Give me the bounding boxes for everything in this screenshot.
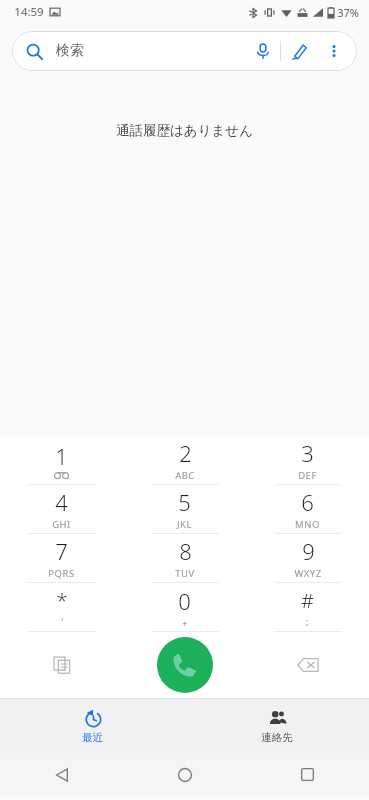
staticText: DEF bbox=[298, 469, 317, 482]
button[interactable]: 7 bbox=[0, 534, 123, 582]
staticText: 1 bbox=[55, 441, 68, 471]
staticText: ABC bbox=[175, 469, 195, 482]
button[interactable]: 4 bbox=[0, 485, 123, 533]
staticText: 検索 bbox=[56, 42, 84, 60]
staticText: GHI bbox=[52, 518, 71, 531]
staticText: PQRS bbox=[48, 567, 75, 580]
staticText: * bbox=[56, 587, 68, 614]
staticText: 7 bbox=[55, 536, 68, 566]
staticText: 9 bbox=[302, 536, 315, 566]
button[interactable]: 8 bbox=[123, 534, 246, 582]
staticText: 通話履歴はありません bbox=[116, 122, 253, 139]
staticText: ; bbox=[306, 615, 309, 627]
button[interactable]: 1 bbox=[0, 436, 123, 484]
staticText: TUV bbox=[175, 567, 195, 580]
staticText: 0 bbox=[178, 586, 191, 616]
staticText: 14:59 bbox=[14, 4, 44, 20]
button[interactable]: Backspace bbox=[246, 632, 369, 698]
button[interactable]: # bbox=[246, 583, 369, 631]
staticText: 連絡先 bbox=[261, 731, 293, 744]
button[interactable]: Back bbox=[0, 753, 123, 796]
staticText: + bbox=[182, 617, 188, 629]
staticText: 37% bbox=[337, 5, 359, 20]
button[interactable]: 検索 bbox=[12, 31, 357, 71]
staticText: WXYZ bbox=[294, 567, 322, 580]
staticText: 4 bbox=[55, 487, 68, 517]
staticText: 6 bbox=[301, 487, 314, 517]
button[interactable]: Edit bbox=[281, 33, 317, 69]
button[interactable]: Recent apps bbox=[246, 753, 369, 796]
staticText: 8 bbox=[179, 536, 192, 566]
button[interactable]: More options bbox=[317, 34, 351, 68]
staticText: 3 bbox=[301, 438, 314, 468]
button[interactable]: Paste bbox=[0, 632, 123, 698]
button[interactable]: 連絡先 bbox=[184, 699, 369, 753]
button[interactable]: * bbox=[0, 583, 123, 631]
button[interactable]: 6 bbox=[246, 485, 369, 533]
button[interactable]: 最近 bbox=[0, 699, 184, 753]
button[interactable]: 3 bbox=[246, 436, 369, 484]
button[interactable]: 2 bbox=[123, 436, 246, 484]
staticText: ' bbox=[61, 615, 64, 627]
staticText: 5 bbox=[178, 487, 191, 517]
staticText: # bbox=[301, 587, 314, 614]
button[interactable]: 5 bbox=[123, 485, 246, 533]
button[interactable]: 0 bbox=[123, 583, 246, 631]
staticText: MNO bbox=[295, 518, 320, 531]
button[interactable]: Voice search bbox=[246, 34, 280, 68]
button[interactable]: Home bbox=[123, 753, 246, 796]
staticText: JKL bbox=[177, 518, 192, 531]
button[interactable]: Call bbox=[157, 637, 213, 693]
button[interactable]: 9 bbox=[246, 534, 369, 582]
staticText: 2 bbox=[179, 438, 192, 468]
staticText: 最近 bbox=[82, 731, 103, 744]
